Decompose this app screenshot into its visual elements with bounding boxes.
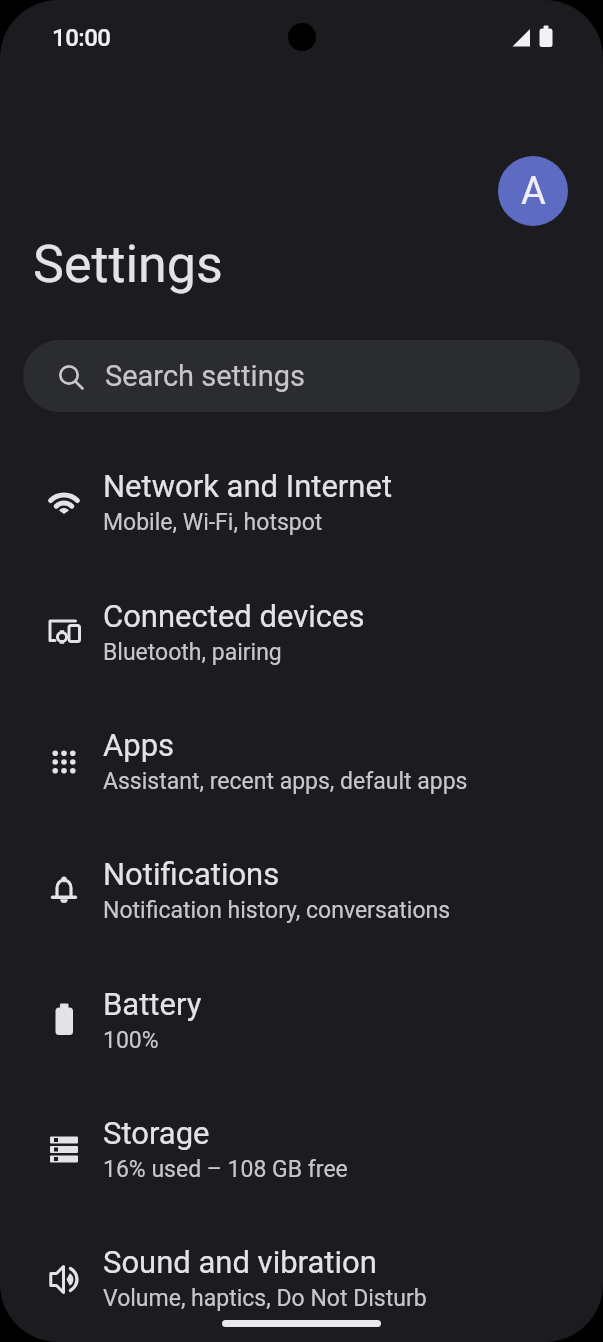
staticText: 100% bbox=[103, 1027, 159, 1054]
staticText: Settings bbox=[33, 234, 223, 295]
button[interactable]: A bbox=[498, 156, 568, 226]
staticText: Network and Internet bbox=[103, 468, 393, 504]
staticText: Notifications bbox=[103, 856, 280, 892]
staticText: Assistant, recent apps, default apps bbox=[103, 768, 468, 795]
button[interactable]: Notifications bbox=[0, 829, 603, 958]
staticText: Battery bbox=[103, 986, 202, 1022]
staticText: Notification history, conversations bbox=[103, 897, 451, 924]
staticText: Storage bbox=[103, 1115, 210, 1151]
staticText: Search settings bbox=[105, 359, 305, 393]
staticText: Sound and vibration bbox=[103, 1244, 377, 1280]
button[interactable]: Battery bbox=[0, 959, 603, 1088]
button[interactable]: Search settings bbox=[23, 340, 580, 412]
button[interactable]: Apps bbox=[0, 700, 603, 829]
button[interactable]: Sound and vibration bbox=[0, 1217, 603, 1342]
button[interactable]: Storage bbox=[0, 1088, 603, 1217]
staticText: Connected devices bbox=[103, 598, 365, 634]
staticText: A bbox=[521, 169, 546, 214]
staticText: 16% used – 108 GB free bbox=[103, 1156, 348, 1183]
staticText: Mobile, Wi-Fi, hotspot bbox=[103, 509, 323, 536]
button[interactable]: Connected devices bbox=[0, 571, 603, 700]
staticText: Bluetooth, pairing bbox=[103, 639, 282, 666]
button[interactable]: Network and Internet bbox=[0, 441, 603, 570]
staticText: Volume, haptics, Do Not Disturb bbox=[103, 1285, 427, 1312]
staticText: 10:00 bbox=[52, 24, 111, 52]
staticText: Apps bbox=[103, 727, 175, 763]
